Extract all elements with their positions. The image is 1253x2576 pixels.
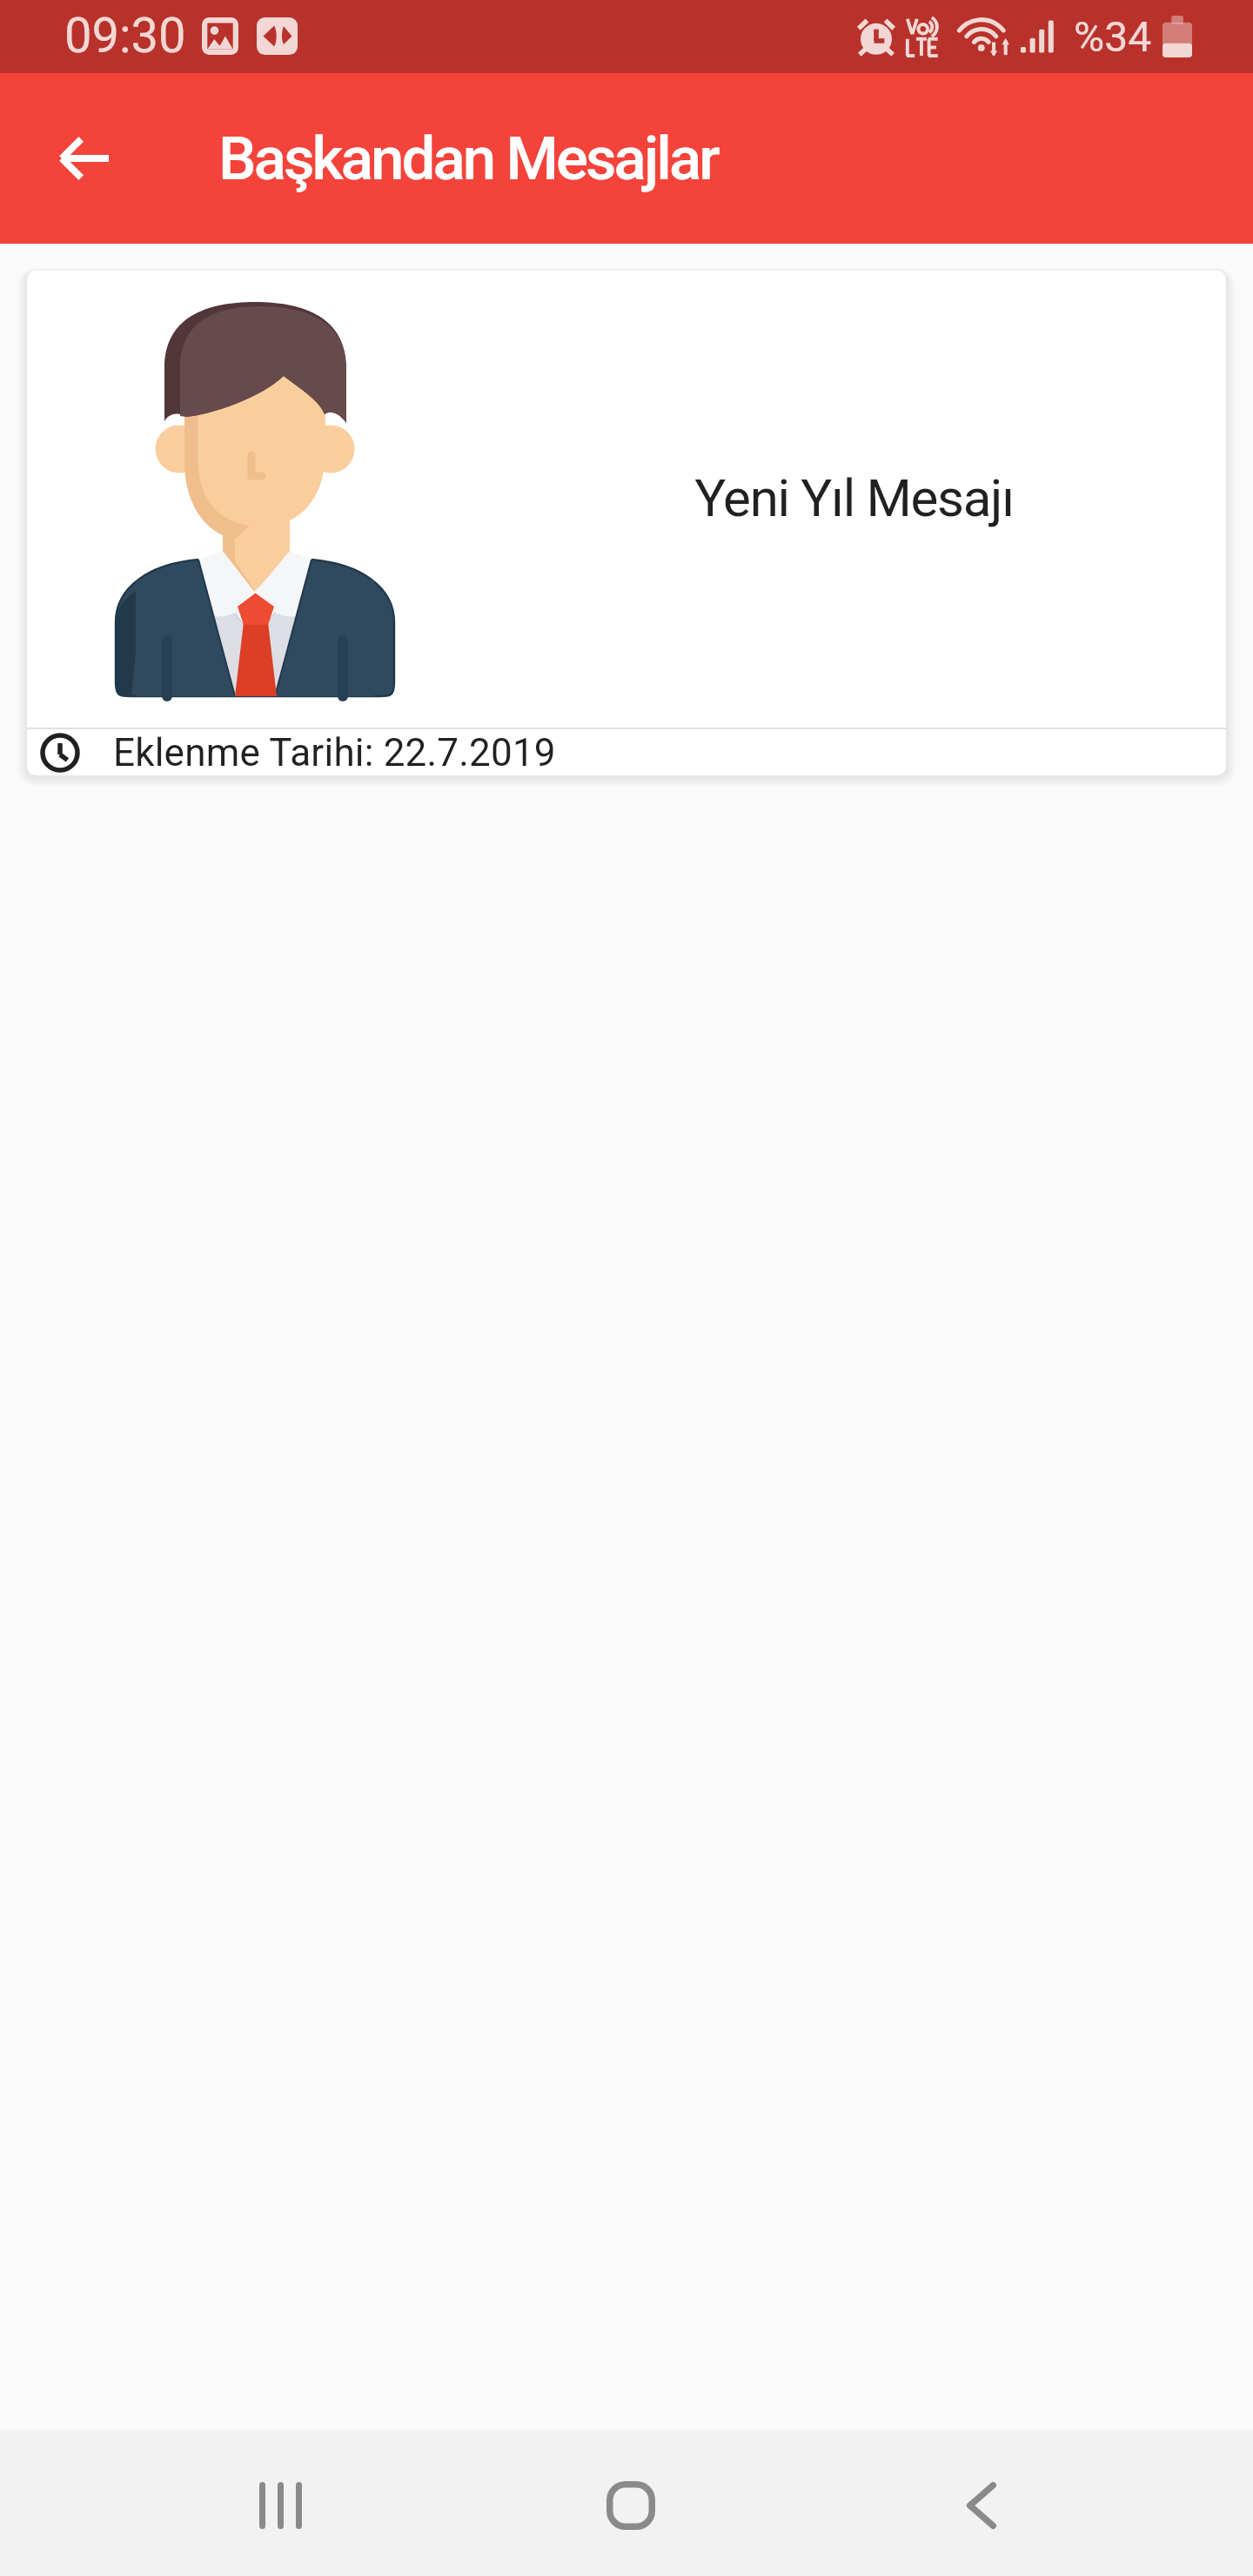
staticText: Başkandan Mesajlar xyxy=(218,124,718,194)
button[interactable]: Yeni Yıl Mesajı xyxy=(27,271,1226,775)
button[interactable]: Back xyxy=(835,2430,1253,2576)
staticText: Yeni Yıl Mesajı xyxy=(694,467,1014,528)
button[interactable]: Home xyxy=(418,2430,835,2576)
staticText: Eklenme Tarihi: 22.7.2019 xyxy=(113,730,556,775)
staticText: %34 xyxy=(1074,12,1152,61)
button[interactable]: Back xyxy=(35,108,136,209)
staticText: 09:30 xyxy=(64,7,186,64)
button[interactable]: Recent apps xyxy=(0,2430,418,2576)
